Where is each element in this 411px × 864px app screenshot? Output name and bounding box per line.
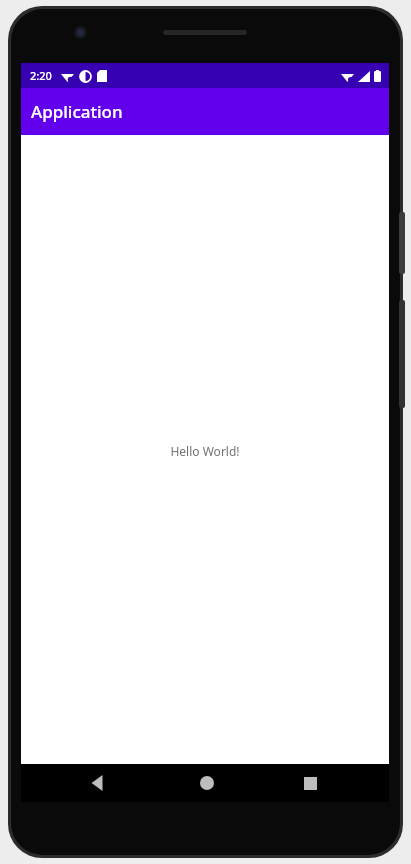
staticText: Hello World! — [170, 443, 240, 459]
button[interactable]: Home — [187, 764, 227, 802]
button[interactable]: Back — [78, 764, 118, 802]
staticText: 2:20 — [30, 68, 52, 83]
staticText: Application — [31, 100, 123, 123]
button[interactable]: Recent apps — [290, 764, 330, 802]
